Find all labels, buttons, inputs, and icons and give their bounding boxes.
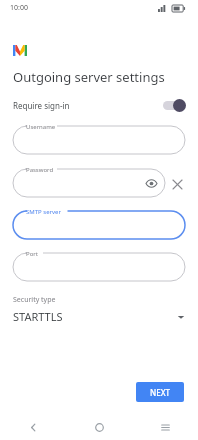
- button[interactable]: Username: [13, 126, 185, 154]
- staticText: SMTP server: [26, 208, 61, 216]
- staticText: Password: [26, 166, 54, 174]
- staticText: NEXT: [150, 387, 171, 398]
- button[interactable]: SMTP server: [13, 211, 185, 239]
- button[interactable]: Clear password: [169, 176, 186, 193]
- staticText: Outgoing server settings: [13, 68, 165, 86]
- button[interactable]: Show password: [143, 175, 159, 191]
- button[interactable]: Security type: [0, 295, 198, 324]
- button[interactable]: Password: [13, 169, 165, 197]
- staticText: Security type: [13, 295, 56, 305]
- button[interactable]: Recent apps: [132, 414, 198, 440]
- button[interactable]: NEXT: [136, 382, 184, 402]
- button[interactable]: Require sign-in: [0, 92, 198, 118]
- staticText: Port: [26, 250, 38, 258]
- button[interactable]: Require sign-in toggle: [163, 99, 185, 112]
- button[interactable]: Home: [66, 414, 132, 440]
- staticText: 10:00: [10, 3, 28, 13]
- staticText: Require sign-in: [13, 100, 70, 111]
- button[interactable]: Back: [0, 414, 66, 440]
- staticText: Username: [26, 123, 56, 131]
- staticText: STARTTLS: [13, 309, 63, 324]
- button[interactable]: Port: [13, 253, 185, 281]
